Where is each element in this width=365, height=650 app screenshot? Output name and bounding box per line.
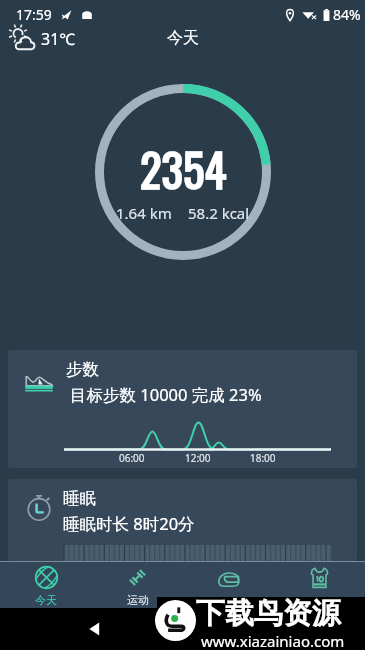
staticText: 今天: [35, 593, 57, 607]
staticText: 84%: [333, 5, 361, 24]
staticText: www.xiazainiao.com: [201, 631, 345, 650]
staticText: 18:00: [250, 451, 276, 465]
staticText: 目标步数 10000 完成 23%: [70, 383, 262, 406]
button[interactable]: Tab: [183, 561, 274, 608]
staticText: 17:59: [16, 5, 52, 24]
staticText: 步数: [66, 359, 99, 380]
staticText: 1.64 km: [116, 203, 172, 223]
other: Back: [88, 622, 102, 636]
button[interactable]: 睡眠: [8, 479, 357, 561]
staticText: 睡眠: [63, 488, 96, 509]
button[interactable]: Tab: [274, 561, 365, 608]
staticText: 58.2 kcal: [188, 203, 250, 223]
staticText: 睡眠时长 8时20分: [63, 512, 195, 535]
staticText: 运动: [127, 593, 149, 607]
staticText: 2354: [140, 135, 227, 202]
button[interactable]: 步数: [8, 350, 357, 468]
button[interactable]: 运动: [92, 561, 183, 608]
button[interactable]: 今天: [0, 561, 92, 608]
staticText: 今天: [167, 28, 199, 48]
staticText: 下载鸟资源: [196, 595, 341, 632]
staticText: 12:00: [185, 451, 211, 465]
staticText: 31℃: [41, 28, 76, 50]
staticText: 06:00: [119, 451, 145, 465]
